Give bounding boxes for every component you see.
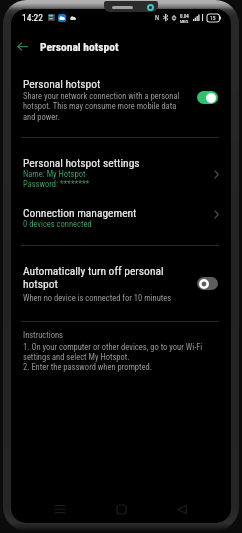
staticText: Connection management <box>23 206 137 219</box>
staticText: Password: ******** <box>23 179 90 189</box>
button[interactable]: Back <box>170 497 194 521</box>
staticText: 15 <box>210 15 216 21</box>
staticText: Instructions <box>23 330 63 340</box>
button[interactable]: Back <box>11 35 33 57</box>
staticText: N <box>155 14 160 22</box>
button[interactable]: Turn off <box>197 91 218 104</box>
staticText: Name: My Hotspot <box>23 169 86 179</box>
button[interactable]: Recents <box>48 497 72 521</box>
staticText: 0.04 <box>180 13 189 19</box>
staticText: MB/S <box>180 19 189 23</box>
staticText: 1. On your computer or other devices, go… <box>23 342 209 362</box>
staticText: Personal hotspot <box>40 40 119 53</box>
staticText: When no device is connected for 10 minut… <box>23 293 172 303</box>
staticText: 14:22 <box>22 12 43 23</box>
button[interactable]: Turn on <box>197 277 218 290</box>
staticText: Automatically turn off personal hotspot <box>23 264 173 290</box>
button[interactable]: Home <box>109 497 133 521</box>
staticText: 0 devices connected <box>23 219 92 229</box>
staticText: 2. Enter the password when prompted. <box>23 362 153 372</box>
staticText: Personal hotspot settings <box>23 156 140 169</box>
staticText: Personal hotspot <box>23 77 101 90</box>
staticText: Share your network connection with a per… <box>23 91 183 122</box>
